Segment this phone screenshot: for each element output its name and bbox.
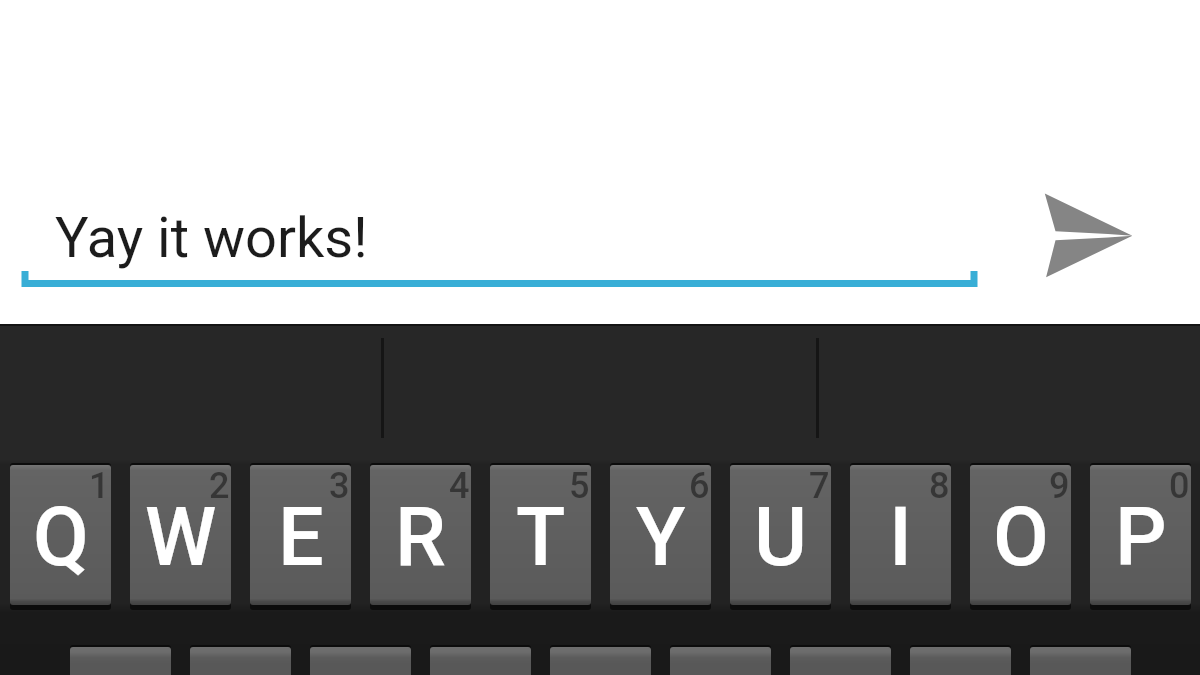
button[interactable]: Send message [1020, 170, 1160, 310]
button[interactable]: Y [610, 465, 711, 605]
staticText: 1 [89, 465, 110, 507]
button[interactable]: L [1030, 647, 1131, 675]
staticText: 0 [1169, 465, 1190, 507]
staticText: U [754, 490, 807, 585]
button[interactable]: I [850, 465, 951, 605]
button[interactable]: G [550, 647, 651, 675]
staticText: Yay it works! [55, 205, 368, 271]
button[interactable]: D [310, 647, 411, 675]
button[interactable]: E [250, 465, 351, 605]
staticText: O [993, 490, 1049, 585]
button[interactable]: U [730, 465, 831, 605]
button[interactable]: T [490, 465, 591, 605]
button[interactable]: F [430, 647, 531, 675]
staticText: 2 [209, 465, 230, 507]
staticText: 8 [929, 465, 950, 507]
staticText: Q [33, 490, 89, 585]
staticText: 5 [569, 465, 590, 507]
button[interactable]: H [670, 647, 771, 675]
staticText: I [889, 490, 912, 585]
button[interactable]: J [790, 647, 891, 675]
staticText: T [516, 490, 566, 585]
staticText: P [1115, 490, 1167, 585]
button[interactable]: P [1090, 465, 1191, 605]
staticText: W [145, 490, 217, 585]
staticText: Y [636, 490, 686, 585]
button[interactable]: A [70, 647, 171, 675]
staticText: 7 [809, 465, 830, 507]
staticText: 9 [1049, 465, 1070, 507]
button[interactable]: O [970, 465, 1071, 605]
staticText: 4 [449, 465, 470, 507]
staticText: E [278, 490, 324, 585]
button[interactable]: K [910, 647, 1011, 675]
button[interactable]: Q [10, 465, 111, 605]
staticText: R [395, 490, 446, 585]
staticText: 6 [689, 465, 710, 507]
button[interactable]: R [370, 465, 471, 605]
staticText: 3 [329, 465, 350, 507]
button[interactable]: S [190, 647, 291, 675]
button[interactable]: W [130, 465, 231, 605]
